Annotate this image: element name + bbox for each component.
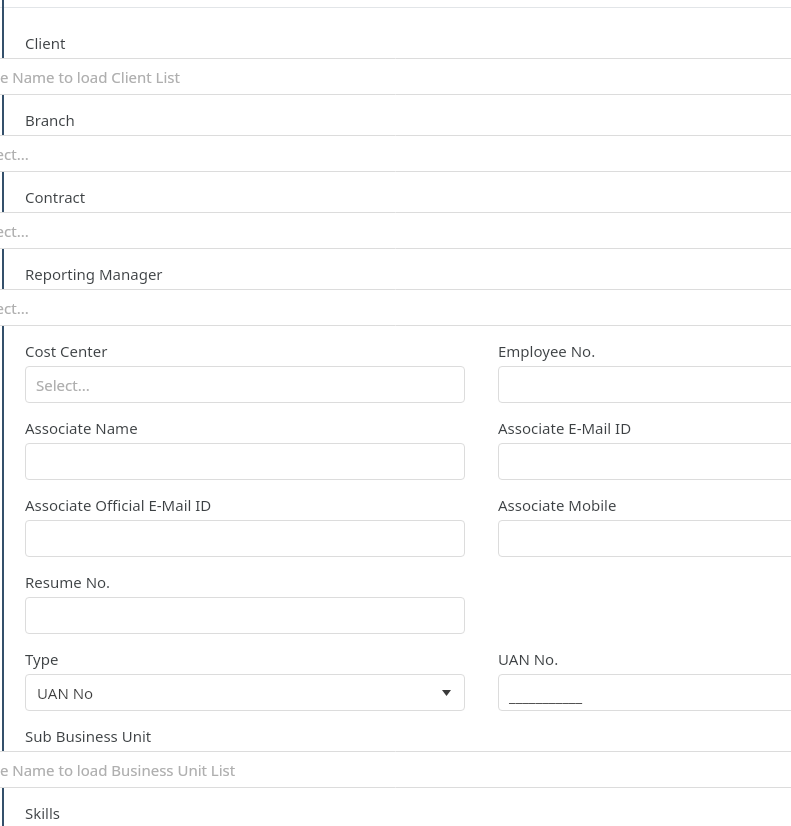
staticText: Select... [0,221,29,241]
button[interactable]: Resume No. [25,597,465,634]
button[interactable]: Reporting Manager [0,289,791,326]
staticText: Select... [0,298,29,318]
button[interactable]: Associate Mobile [498,520,791,557]
button[interactable]: UAN No. [498,674,791,711]
staticText: Skills [25,803,61,823]
staticText: Cost Center [25,341,108,361]
staticText: Reporting Manager [25,264,163,284]
button[interactable]: Cost Center [25,366,465,403]
button[interactable]: Employee No. [498,366,791,403]
staticText: Associate Official E-Mail ID [25,495,212,515]
staticText: Associate Name [25,418,138,438]
button[interactable]: Associate Name [25,443,465,480]
staticText: Type [25,649,59,669]
staticText: Associate E-Mail ID [498,418,632,438]
staticText: Branch [25,110,75,130]
staticText: UAN No [37,683,94,703]
staticText: Type Name to load Business Unit List [0,760,236,780]
button[interactable]: Associate Official E-Mail ID [25,520,465,557]
staticText: Type Name to load Client List [0,67,180,87]
button[interactable]: Sub Business Unit [0,751,791,788]
staticText: UAN No. [498,649,559,669]
staticText: Select... [36,375,90,395]
button[interactable]: Associate E-Mail ID [498,443,791,480]
button[interactable]: Branch [0,135,791,172]
button[interactable]: Type [25,674,465,711]
staticText: Resume No. [25,572,111,592]
staticText: Client [25,33,66,53]
staticText: Contract [25,187,86,207]
button[interactable]: Client [0,58,791,95]
staticText: Employee No. [498,341,596,361]
staticText: Associate Mobile [498,495,617,515]
button[interactable]: Contract [0,212,791,249]
staticText: ___________ [509,686,583,706]
staticText: Select... [0,144,29,164]
staticText: Sub Business Unit [25,726,152,746]
